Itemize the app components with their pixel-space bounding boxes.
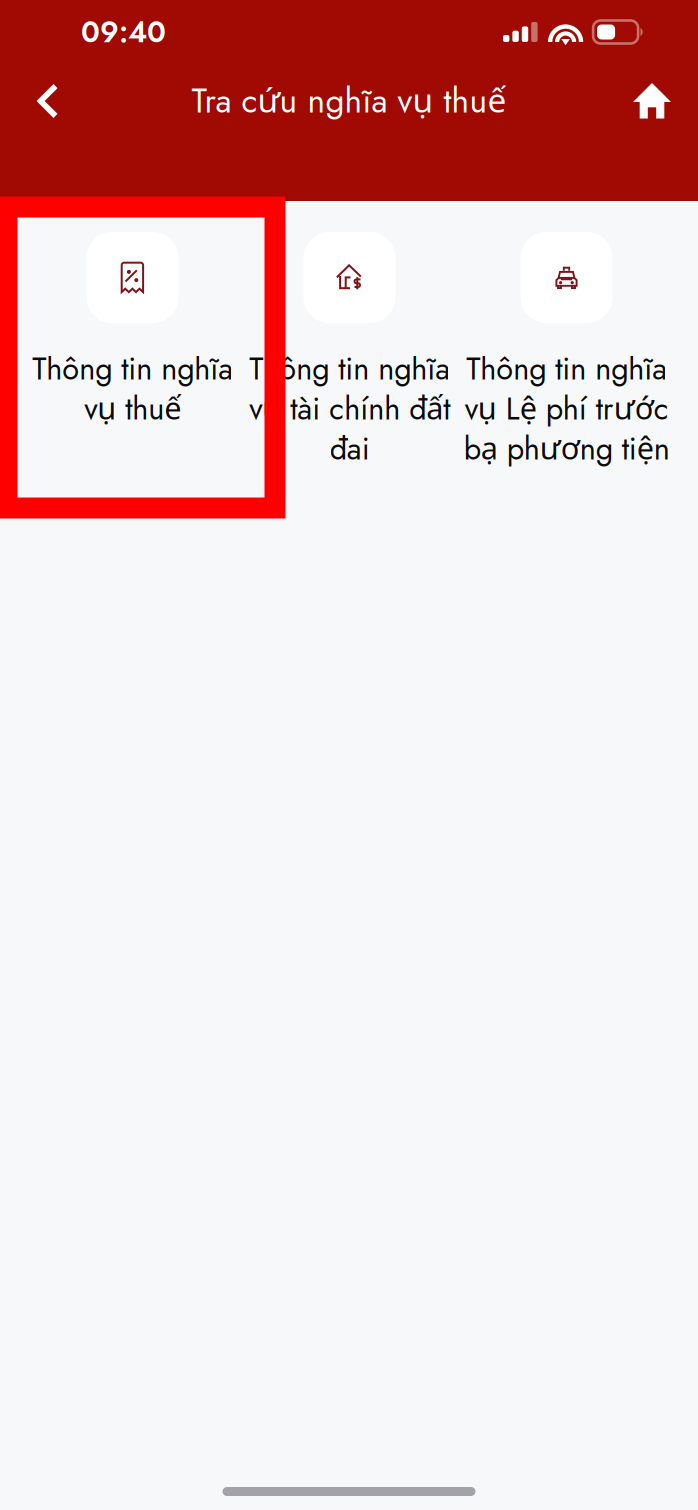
- staticText: Thông tin nghĩa vụ thuế: [32, 349, 233, 429]
- button[interactable]: Thông tin nghĩa vụ thuế: [24, 232, 241, 844]
- button[interactable]: Trang chủ: [606, 64, 698, 138]
- staticText: Thông tin nghĩa vụ tài chính đất đai: [249, 349, 450, 469]
- staticText: 09:40: [81, 11, 166, 53]
- button[interactable]: Thông tin nghĩa vụ tài chính đất đai: [241, 232, 458, 844]
- staticText: Thông tin nghĩa vụ Lệ phí trước bạ phươn…: [463, 349, 669, 469]
- staticText: Tra cứu nghĩa vụ thuế: [191, 77, 506, 125]
- button[interactable]: Thông tin nghĩa vụ Lệ phí trước bạ phươn…: [458, 232, 675, 844]
- button[interactable]: Quay lại: [0, 64, 92, 138]
